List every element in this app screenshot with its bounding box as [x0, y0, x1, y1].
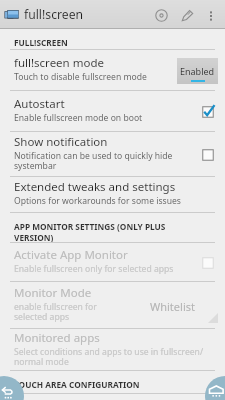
button[interactable]: Home	[205, 376, 225, 400]
staticText: enable fullscreen for selected apps	[14, 301, 127, 322]
staticText: Autostart	[14, 96, 65, 112]
staticText: Enabled	[180, 65, 215, 77]
button[interactable]: Monitor Mode	[0, 282, 225, 329]
button[interactable]: Edit	[174, 2, 200, 28]
staticText: Enable fullscreen only for selected apps	[14, 263, 174, 275]
button[interactable]: Enabled	[177, 58, 218, 84]
button[interactable]: Autostart	[0, 91, 225, 132]
button[interactable]: Show notification	[0, 132, 225, 177]
button[interactable]: Info	[148, 2, 174, 28]
staticText: Enable fullscreen mode on boot	[14, 112, 143, 124]
staticText: Show notification	[14, 134, 108, 150]
staticText: Whitelist	[150, 299, 195, 314]
staticText: FULL!SCREEN	[14, 37, 68, 48]
button[interactable]: Whitelist	[150, 289, 218, 323]
button[interactable]: Extended tweaks and settings	[0, 177, 225, 213]
button[interactable]: Monitored apps	[0, 329, 225, 371]
button[interactable]: Back	[0, 376, 24, 400]
staticText: Options for workarounds for some issues	[14, 195, 181, 207]
staticText: full!screen	[24, 6, 84, 23]
button[interactable]: Toggle	[198, 102, 218, 122]
staticText: Select conditions and apps to use in ful…	[14, 346, 223, 367]
staticText: Touch to disable fullscreen mode	[14, 71, 147, 83]
staticText: TOUCH AREA CONFIGURATION	[14, 379, 140, 390]
staticText: Activate App Monitor	[14, 247, 128, 263]
button[interactable]: Activate App Monitor	[0, 243, 225, 282]
button[interactable]: full!screen mode	[0, 50, 225, 91]
staticText: Notification can be used to quickly hide…	[14, 150, 186, 171]
staticText: APP MONITOR SETTINGS (ONLY PLUS VERSION)	[14, 221, 185, 243]
button[interactable]: Toggle	[198, 145, 218, 165]
staticText: Monitored apps	[14, 330, 100, 346]
staticText: Monitor Mode	[14, 285, 92, 301]
staticText: full!screen mode	[14, 55, 104, 71]
button[interactable]: More options	[200, 4, 222, 26]
button[interactable]: Toggle	[198, 253, 218, 273]
staticText: Extended tweaks and settings	[14, 179, 176, 195]
